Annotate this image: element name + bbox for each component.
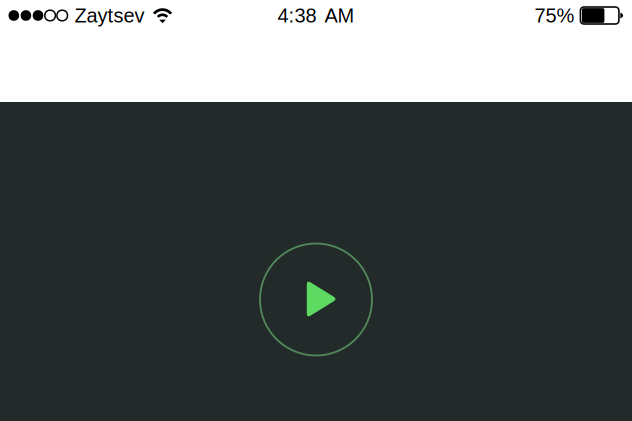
staticText: Zaytsev [74, 4, 144, 27]
staticText: 75% [534, 4, 574, 27]
button[interactable]: Play [260, 243, 372, 355]
staticText: 4:38 AM [277, 4, 354, 27]
